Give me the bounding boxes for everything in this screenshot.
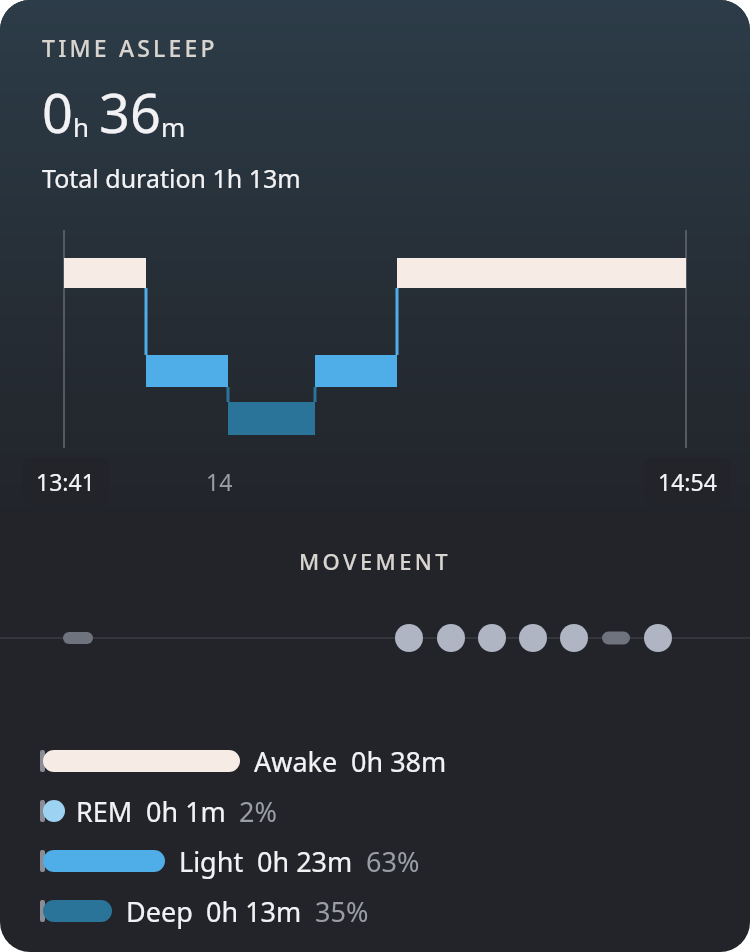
button[interactable]: 13:41 xyxy=(22,458,109,505)
button[interactable]: REM xyxy=(0,788,750,834)
button[interactable]: 14:54 xyxy=(644,458,731,505)
button[interactable]: Movement chart xyxy=(0,612,750,664)
staticText: 0h 13m xyxy=(206,893,302,930)
staticText: 0h 1m xyxy=(146,793,226,830)
staticText: 0 xyxy=(42,75,73,149)
staticText: h xyxy=(73,109,90,144)
staticText: 2% xyxy=(239,793,277,830)
staticText: REM xyxy=(76,793,133,830)
staticText: 0h 23m xyxy=(257,843,353,880)
staticText: 14 xyxy=(206,466,233,497)
staticText: Deep xyxy=(126,893,193,930)
staticText: 13:41 xyxy=(36,466,95,497)
button[interactable]: Awake xyxy=(0,738,750,784)
staticText: 14:54 xyxy=(658,466,717,497)
staticText: m xyxy=(161,109,186,144)
staticText: 0h 38m xyxy=(351,743,447,780)
button[interactable] xyxy=(0,220,750,455)
button[interactable]: Deep xyxy=(0,888,750,934)
staticText: 36 xyxy=(99,75,161,149)
button[interactable]: Light xyxy=(0,838,750,884)
staticText: MOVEMENT xyxy=(0,546,750,576)
staticText: 63% xyxy=(366,843,420,880)
staticText: Awake xyxy=(254,743,338,780)
staticText: Total duration 1h 13m xyxy=(42,161,301,195)
staticText: 35% xyxy=(315,893,369,930)
staticText: Light xyxy=(179,843,244,880)
staticText: TIME ASLEEP xyxy=(42,32,218,63)
